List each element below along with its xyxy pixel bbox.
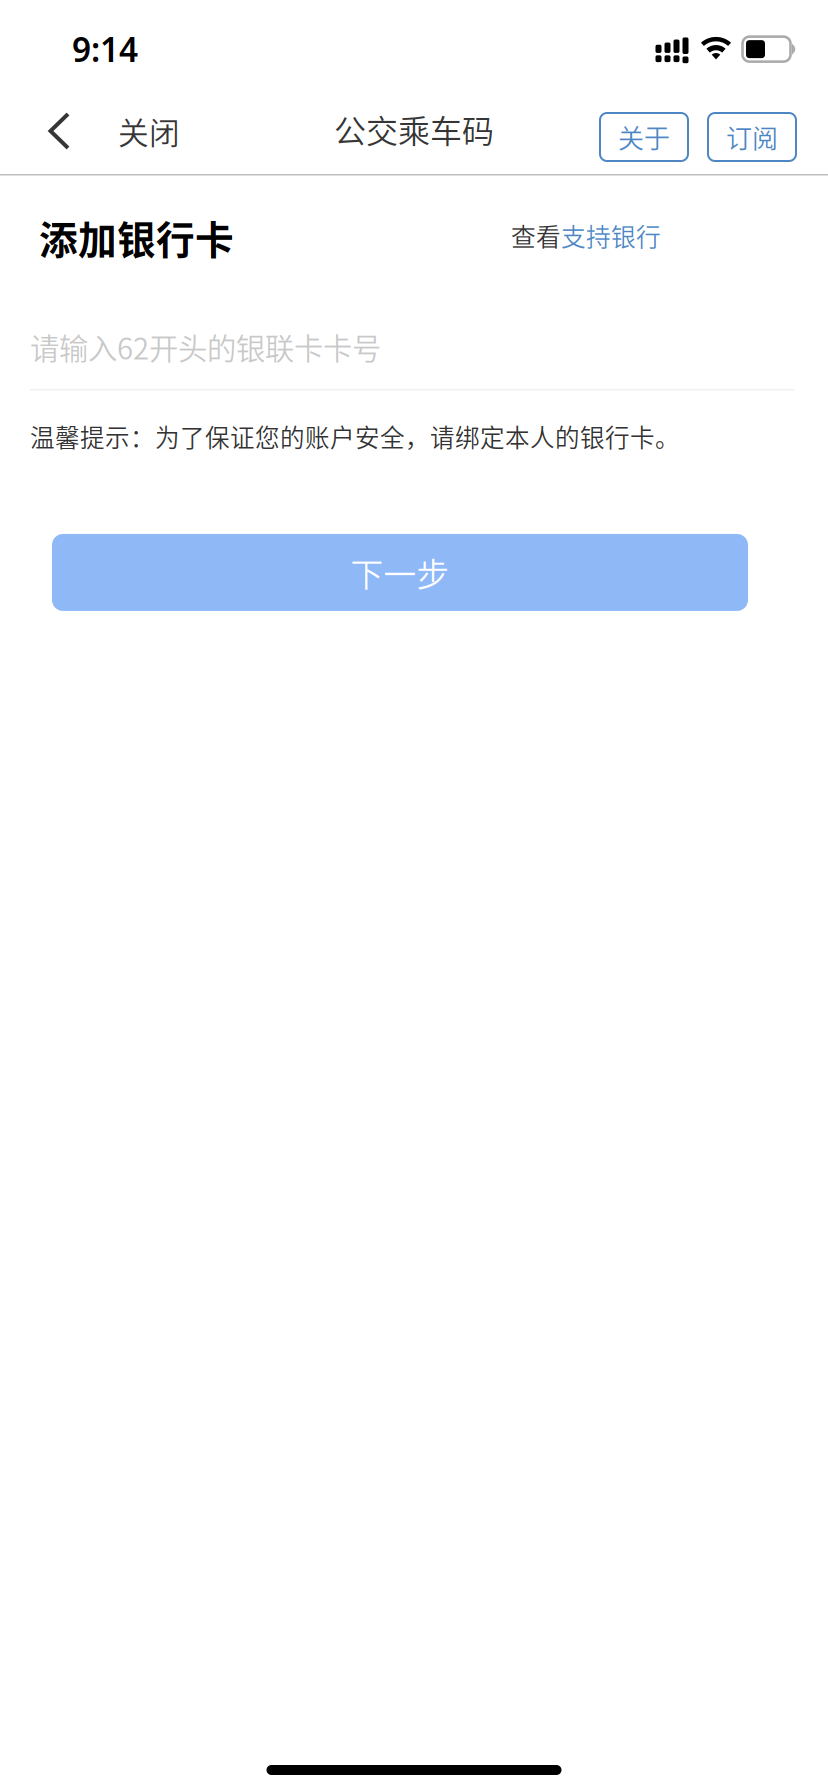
staticText: 添加银行卡	[39, 209, 234, 265]
staticText: 温馨提示：为了保证您的账户安全，请绑定本人的银行卡。	[30, 418, 680, 454]
button[interactable]: 请输入62开头的银联卡卡号	[30, 325, 795, 390]
button[interactable]: 下一步	[52, 534, 748, 611]
staticText: 下一步	[350, 549, 449, 596]
staticText: 支持银行	[561, 218, 661, 253]
button[interactable]: 查看	[511, 220, 661, 267]
button[interactable]: 订阅	[708, 113, 796, 161]
staticText: 请输入62开头的银联卡卡号	[30, 325, 381, 368]
staticText: 订阅	[726, 118, 778, 156]
button[interactable]: 关于	[600, 113, 688, 161]
button[interactable]: 返回	[0, 88, 94, 174]
button[interactable]: 关闭	[94, 88, 200, 174]
staticText: 公交乘车码	[334, 106, 494, 152]
staticText: 9:14	[72, 27, 138, 71]
staticText: 查看	[511, 218, 561, 253]
staticText: 关于	[618, 118, 670, 156]
staticText: 关闭	[118, 109, 180, 153]
